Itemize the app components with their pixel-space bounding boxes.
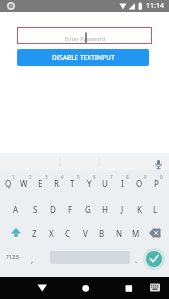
button[interactable]: B [82, 224, 122, 242]
staticText: Z [32, 228, 37, 239]
staticText: O [136, 178, 143, 189]
staticText: X [49, 228, 54, 239]
button[interactable]: ?123 [0, 248, 32, 266]
button[interactable] [146, 251, 162, 267]
staticText: 6 [93, 174, 96, 180]
staticText: Y [87, 178, 92, 189]
staticText: 4 [61, 174, 64, 180]
button[interactable]: X [31, 224, 71, 242]
staticText: P [154, 178, 159, 189]
staticText: Q [5, 178, 12, 189]
staticText: 8 [126, 174, 129, 180]
staticText: A [13, 204, 19, 215]
button[interactable]: N [99, 224, 139, 242]
button[interactable]: C [48, 224, 88, 242]
staticText: DISABLE TEXTINPUT [52, 53, 115, 62]
button[interactable]: Q [0, 174, 28, 192]
button[interactable] [30, 279, 54, 297]
button[interactable]: Z [14, 224, 54, 242]
button[interactable] [17, 27, 152, 44]
staticText: 1 [12, 174, 15, 180]
button[interactable]: R [36, 174, 76, 192]
staticText: N [116, 228, 123, 239]
button[interactable]: G [68, 200, 108, 218]
button[interactable]: I [102, 174, 142, 192]
staticText: V [83, 228, 88, 239]
button[interactable]: O [119, 174, 159, 192]
button[interactable]: T [52, 174, 92, 192]
button[interactable]: V [65, 224, 105, 242]
staticText: B [99, 228, 105, 239]
button[interactable] [117, 279, 141, 297]
staticText: D [50, 204, 56, 215]
button[interactable]: J [102, 200, 142, 218]
staticText: . [135, 254, 138, 265]
button[interactable]: . [116, 250, 156, 268]
staticText: C [65, 228, 71, 239]
staticText: 3 [45, 174, 48, 180]
staticText: M [132, 228, 140, 239]
staticText: L [153, 204, 158, 215]
button[interactable]: U [85, 174, 125, 192]
staticText: , [31, 254, 34, 265]
button[interactable]: E [20, 174, 60, 192]
staticText: Enter Password [65, 35, 106, 42]
staticText: S [33, 204, 38, 215]
staticText: J [121, 204, 124, 215]
staticText: 11:14 [146, 1, 164, 11]
button[interactable]: M [116, 224, 156, 242]
button[interactable]: K [119, 200, 159, 218]
staticText: K [137, 204, 142, 215]
button[interactable]: L [135, 200, 169, 218]
staticText: ?123 [6, 253, 19, 261]
staticText: W [20, 178, 28, 189]
button[interactable]: DISABLE TEXTINPUT [17, 49, 149, 66]
staticText: T [70, 178, 75, 189]
button[interactable]: H [85, 200, 125, 218]
staticText: 5 [77, 174, 80, 180]
staticText: 7 [110, 174, 113, 180]
button[interactable]: F [50, 200, 90, 218]
button[interactable]: W [4, 174, 44, 192]
button[interactable]: , [12, 250, 52, 268]
button[interactable]: A [0, 200, 36, 218]
staticText: F [68, 204, 73, 215]
staticText: 0 [160, 174, 163, 180]
staticText: R [54, 178, 59, 189]
staticText: H [102, 204, 108, 215]
staticText: G [85, 204, 91, 215]
staticText: U [102, 178, 108, 189]
staticText: E [38, 178, 43, 189]
staticText: 2 [29, 174, 32, 180]
button[interactable]: Y [69, 174, 109, 192]
button[interactable] [74, 279, 98, 297]
button[interactable] [147, 279, 165, 297]
staticText: 9 [144, 174, 147, 180]
staticText: I [121, 178, 124, 189]
button[interactable]: S [15, 200, 55, 218]
button[interactable]: D [33, 200, 73, 218]
button[interactable]: P [136, 174, 169, 192]
